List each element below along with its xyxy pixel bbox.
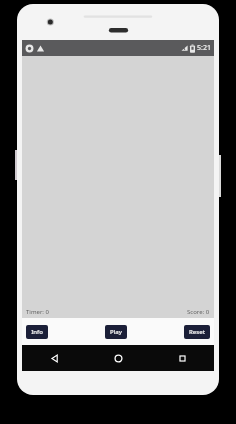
staticText: Reset bbox=[189, 328, 205, 336]
staticText: Info bbox=[31, 328, 43, 336]
button[interactable]: Home bbox=[86, 345, 150, 371]
button[interactable]: Back bbox=[22, 345, 86, 371]
staticText: Play bbox=[110, 328, 122, 336]
button[interactable]: Recent apps bbox=[150, 345, 214, 371]
button[interactable]: Play bbox=[105, 325, 127, 339]
staticText: 5:21 bbox=[197, 43, 211, 53]
button[interactable]: Info bbox=[26, 325, 48, 339]
button[interactable]: Reset bbox=[184, 325, 210, 339]
staticText: Timer: 0 bbox=[26, 308, 49, 316]
staticText: Score: 0 bbox=[187, 308, 210, 316]
